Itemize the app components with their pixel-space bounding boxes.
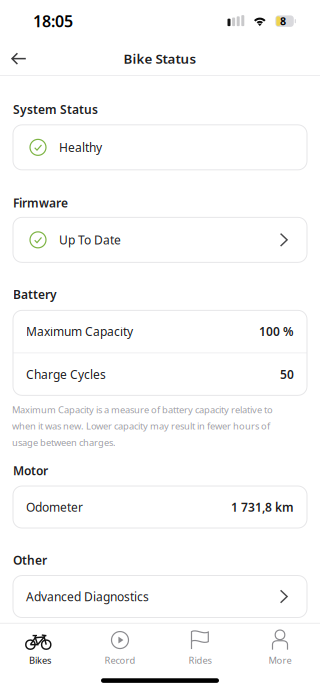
staticText: Odometer bbox=[26, 499, 83, 515]
staticText: Healthy bbox=[59, 139, 102, 155]
staticText: Charge Cycles bbox=[26, 366, 106, 382]
staticText: Rides bbox=[188, 654, 211, 666]
staticText: 100 % bbox=[259, 323, 294, 339]
button[interactable]: Record bbox=[80, 630, 160, 666]
button[interactable]: Rides bbox=[160, 630, 240, 666]
staticText: More bbox=[268, 654, 291, 666]
button[interactable]: Bikes bbox=[0, 630, 80, 666]
staticText: 8 bbox=[280, 14, 286, 28]
staticText: Battery bbox=[13, 286, 57, 302]
staticText: Other bbox=[13, 552, 47, 568]
staticText: Bike Status bbox=[123, 50, 196, 67]
staticText: Maximum Capacity is a measure of battery… bbox=[12, 403, 273, 448]
button[interactable]: Back bbox=[0, 42, 37, 75]
button[interactable]: Up To Date bbox=[13, 217, 307, 262]
button[interactable]: Healthy bbox=[13, 125, 307, 170]
staticText: 50 bbox=[280, 366, 294, 382]
staticText: 18:05 bbox=[33, 10, 73, 32]
button[interactable]: Advanced Diagnostics bbox=[13, 575, 307, 617]
staticText: Firmware bbox=[13, 195, 68, 211]
staticText: Maximum Capacity bbox=[26, 323, 133, 339]
staticText: Up To Date bbox=[59, 232, 121, 248]
staticText: Bikes bbox=[29, 654, 51, 666]
staticText: Motor bbox=[13, 463, 48, 478]
staticText: 1 731,8 km bbox=[231, 499, 294, 515]
staticText: Advanced Diagnostics bbox=[26, 589, 149, 604]
button[interactable]: More bbox=[240, 630, 320, 666]
staticText: Record bbox=[104, 654, 135, 666]
staticText: System Status bbox=[13, 101, 98, 117]
